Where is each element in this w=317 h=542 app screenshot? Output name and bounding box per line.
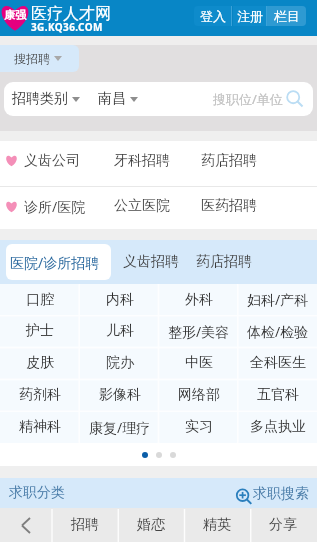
button[interactable]: 护士 bbox=[0, 315, 80, 347]
button[interactable]: 中医 bbox=[159, 347, 238, 379]
staticText: 整形/美容 bbox=[168, 322, 230, 341]
staticText: 儿科 bbox=[106, 322, 134, 340]
staticText: 招聘 bbox=[71, 516, 99, 534]
staticText: 搜招聘 bbox=[14, 51, 50, 66]
staticText: 康强 bbox=[4, 8, 26, 22]
button[interactable]: 义齿招聘 bbox=[111, 244, 189, 280]
button[interactable]: 栏目 bbox=[267, 6, 306, 26]
button[interactable]: 招聘类别 bbox=[12, 90, 80, 108]
button[interactable]: 精神科 bbox=[0, 411, 80, 443]
button[interactable]: 医药招聘 bbox=[201, 197, 257, 215]
staticText: 3G.KQ36.COM bbox=[31, 20, 103, 34]
button[interactable]: 招聘 bbox=[52, 508, 118, 542]
button[interactable]: 影像科 bbox=[80, 379, 159, 411]
button[interactable]: 南昌 bbox=[98, 90, 138, 108]
staticText: 外科 bbox=[185, 291, 213, 309]
staticText: 精神科 bbox=[19, 418, 61, 436]
staticText: 皮肤 bbox=[26, 354, 54, 372]
button[interactable]: 网络部 bbox=[159, 379, 238, 411]
staticText: 求职搜索 bbox=[253, 485, 309, 503]
button[interactable]: 医院/诊所招聘 bbox=[6, 244, 111, 280]
button[interactable]: 康复/理疗 bbox=[80, 411, 159, 443]
staticText: 义齿公司 bbox=[24, 152, 80, 170]
staticText: 全科医生 bbox=[250, 354, 306, 372]
staticText: 多点执业 bbox=[250, 418, 306, 436]
staticText: 药店招聘 bbox=[196, 253, 252, 271]
button[interactable]: 外科 bbox=[159, 284, 238, 315]
button[interactable]: 牙科招聘 bbox=[114, 152, 201, 170]
button[interactable]: 药剂科 bbox=[0, 379, 80, 411]
button[interactable]: 求职搜索 bbox=[233, 484, 309, 503]
button[interactable]: 五官科 bbox=[238, 379, 317, 411]
button[interactable]: 多点执业 bbox=[238, 411, 317, 443]
button[interactable]: 注册 bbox=[233, 6, 266, 26]
button[interactable]: 诊所/医院 bbox=[24, 197, 114, 216]
staticText: 诊所/医院 bbox=[24, 197, 86, 216]
staticText: 牙科招聘 bbox=[114, 152, 170, 170]
staticText: 求职分类 bbox=[9, 484, 65, 502]
button[interactable]: 婚恋 bbox=[118, 508, 184, 542]
staticText: 实习 bbox=[185, 418, 213, 436]
staticText: 体检/检验 bbox=[247, 322, 309, 341]
staticText: 婚恋 bbox=[137, 516, 165, 534]
staticText: 网络部 bbox=[178, 386, 220, 404]
staticText: 药店招聘 bbox=[201, 152, 257, 170]
staticText: 妇科/产科 bbox=[247, 290, 309, 309]
staticText: 院办 bbox=[106, 354, 134, 372]
staticText: 医院/诊所招聘 bbox=[10, 253, 100, 272]
button[interactable]: 义齿公司 bbox=[24, 152, 114, 170]
button[interactable]: 公立医院 bbox=[114, 197, 201, 215]
staticText: 招聘类别 bbox=[12, 90, 68, 108]
button[interactable]: 妇科/产科 bbox=[238, 284, 317, 315]
staticText: 精英 bbox=[203, 516, 231, 534]
staticText: 影像科 bbox=[99, 386, 141, 404]
staticText: 公立医院 bbox=[114, 197, 170, 215]
staticText: 搜职位/单位 bbox=[213, 90, 283, 108]
button[interactable]: 口腔 bbox=[0, 284, 80, 315]
button[interactable]: 全科医生 bbox=[238, 347, 317, 379]
button[interactable]: 药店招聘 bbox=[189, 244, 259, 280]
button[interactable]: 体检/检验 bbox=[238, 315, 317, 347]
staticText: 义齿招聘 bbox=[123, 253, 179, 271]
staticText: 南昌 bbox=[98, 90, 126, 108]
button[interactable]: 搜招聘 bbox=[0, 45, 79, 72]
staticText: 栏目 bbox=[274, 8, 300, 24]
staticText: 分享 bbox=[269, 516, 297, 534]
staticText: 医疗人才网 bbox=[31, 4, 111, 24]
button[interactable]: 搜职位/单位 bbox=[213, 90, 304, 108]
staticText: 护士 bbox=[26, 322, 54, 340]
staticText: 五官科 bbox=[257, 386, 299, 404]
staticText: 口腔 bbox=[26, 291, 54, 309]
staticText: 医药招聘 bbox=[201, 197, 257, 215]
button[interactable]: 儿科 bbox=[80, 315, 159, 347]
staticText: 登入 bbox=[200, 8, 226, 24]
staticText: 中医 bbox=[185, 354, 213, 372]
staticText: 康复/理疗 bbox=[89, 418, 151, 437]
staticText: 药剂科 bbox=[19, 386, 61, 404]
button[interactable]: 实习 bbox=[159, 411, 238, 443]
button[interactable]: 院办 bbox=[80, 347, 159, 379]
button[interactable]: 内科 bbox=[80, 284, 159, 315]
staticText: 注册 bbox=[237, 8, 263, 24]
button[interactable]: 整形/美容 bbox=[159, 315, 238, 347]
button[interactable]: 返回 bbox=[0, 508, 52, 542]
button[interactable]: 登入 bbox=[194, 6, 231, 26]
button[interactable]: 分享 bbox=[250, 508, 316, 542]
button[interactable]: 精英 bbox=[184, 508, 250, 542]
button[interactable]: 皮肤 bbox=[0, 347, 80, 379]
staticText: 内科 bbox=[106, 291, 134, 309]
button[interactable]: 药店招聘 bbox=[201, 152, 257, 170]
